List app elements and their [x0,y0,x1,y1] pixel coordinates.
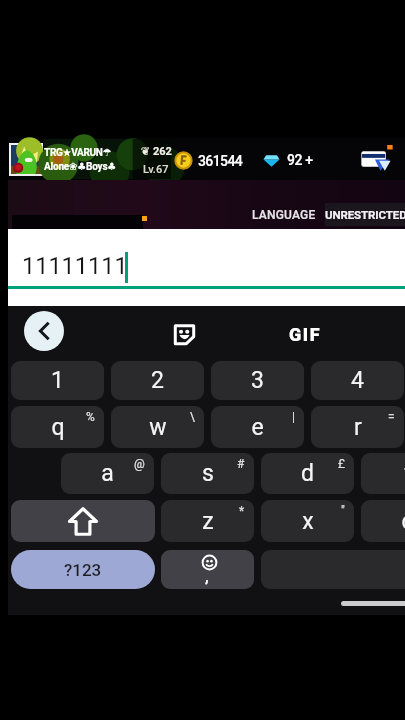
staticText: r [354,414,362,441]
staticText: | [292,410,295,424]
button[interactable]: a [61,453,154,494]
button[interactable]: s [161,453,254,494]
button[interactable]: d [261,453,354,494]
button[interactable]: e [211,406,304,448]
staticText: 11111111 [22,252,128,280]
staticText: e [251,414,264,441]
staticText: 1 [51,367,64,394]
staticText: 92 + [287,152,313,168]
staticText: c [401,508,405,535]
staticText: 4 [351,367,364,394]
staticText: ❦ 262 [141,145,172,158]
staticText: % [86,410,95,424]
button[interactable]: LANGUAGE [249,203,319,226]
staticText: TRG★VARUN☂ [44,147,112,159]
button[interactable]: x [261,500,354,542]
button[interactable]: UNRESTRICTED [325,203,405,226]
button[interactable]: f [361,453,405,494]
button[interactable]: ?123 [11,550,155,589]
staticText: \ [190,410,195,424]
button[interactable]: Back [24,311,64,351]
button[interactable]: r [311,406,404,448]
staticText: LANGUAGE [252,208,316,222]
staticText: a [101,460,114,487]
button[interactable]: c [361,500,405,542]
staticText: * [239,504,245,518]
staticText: f [404,460,405,487]
staticText: # [237,457,245,471]
staticText: z [202,508,214,535]
staticText: " [341,504,345,518]
button[interactable]: 92 + [263,152,313,168]
staticText: £ [338,457,345,471]
staticText: 361544 [198,153,243,169]
staticText: GIF [289,324,322,345]
staticText: ?123 [64,560,102,580]
staticText: d [301,460,314,487]
button[interactable]: w [111,406,204,448]
staticText: w [149,414,167,441]
staticText: q [51,414,65,441]
staticText: @ [134,457,145,471]
button[interactable]: Shift [11,500,155,542]
staticText: 2 [151,367,164,394]
staticText: Alone❀♣Boys♣ [44,161,117,173]
staticText: 3 [251,367,264,394]
button[interactable]: 4 [311,361,404,400]
button[interactable]: 3 [211,361,304,400]
button[interactable]: 361544 [175,152,243,169]
button[interactable]: q [11,406,104,448]
staticText: s [202,460,214,487]
staticText: x [302,508,314,535]
staticText: UNRESTRICTED [325,208,405,221]
staticText: Lv.67 [143,163,169,176]
button[interactable]: 1 [11,361,104,400]
staticText: = [388,410,395,424]
button[interactable]: Emoji [161,550,254,589]
staticText: , [205,568,209,586]
button[interactable]: GIF [278,315,332,353]
button[interactable]: Top up [360,145,394,173]
button[interactable]: Stickers [163,315,205,353]
button[interactable]: z [161,500,254,542]
button[interactable]: 2 [111,361,204,400]
